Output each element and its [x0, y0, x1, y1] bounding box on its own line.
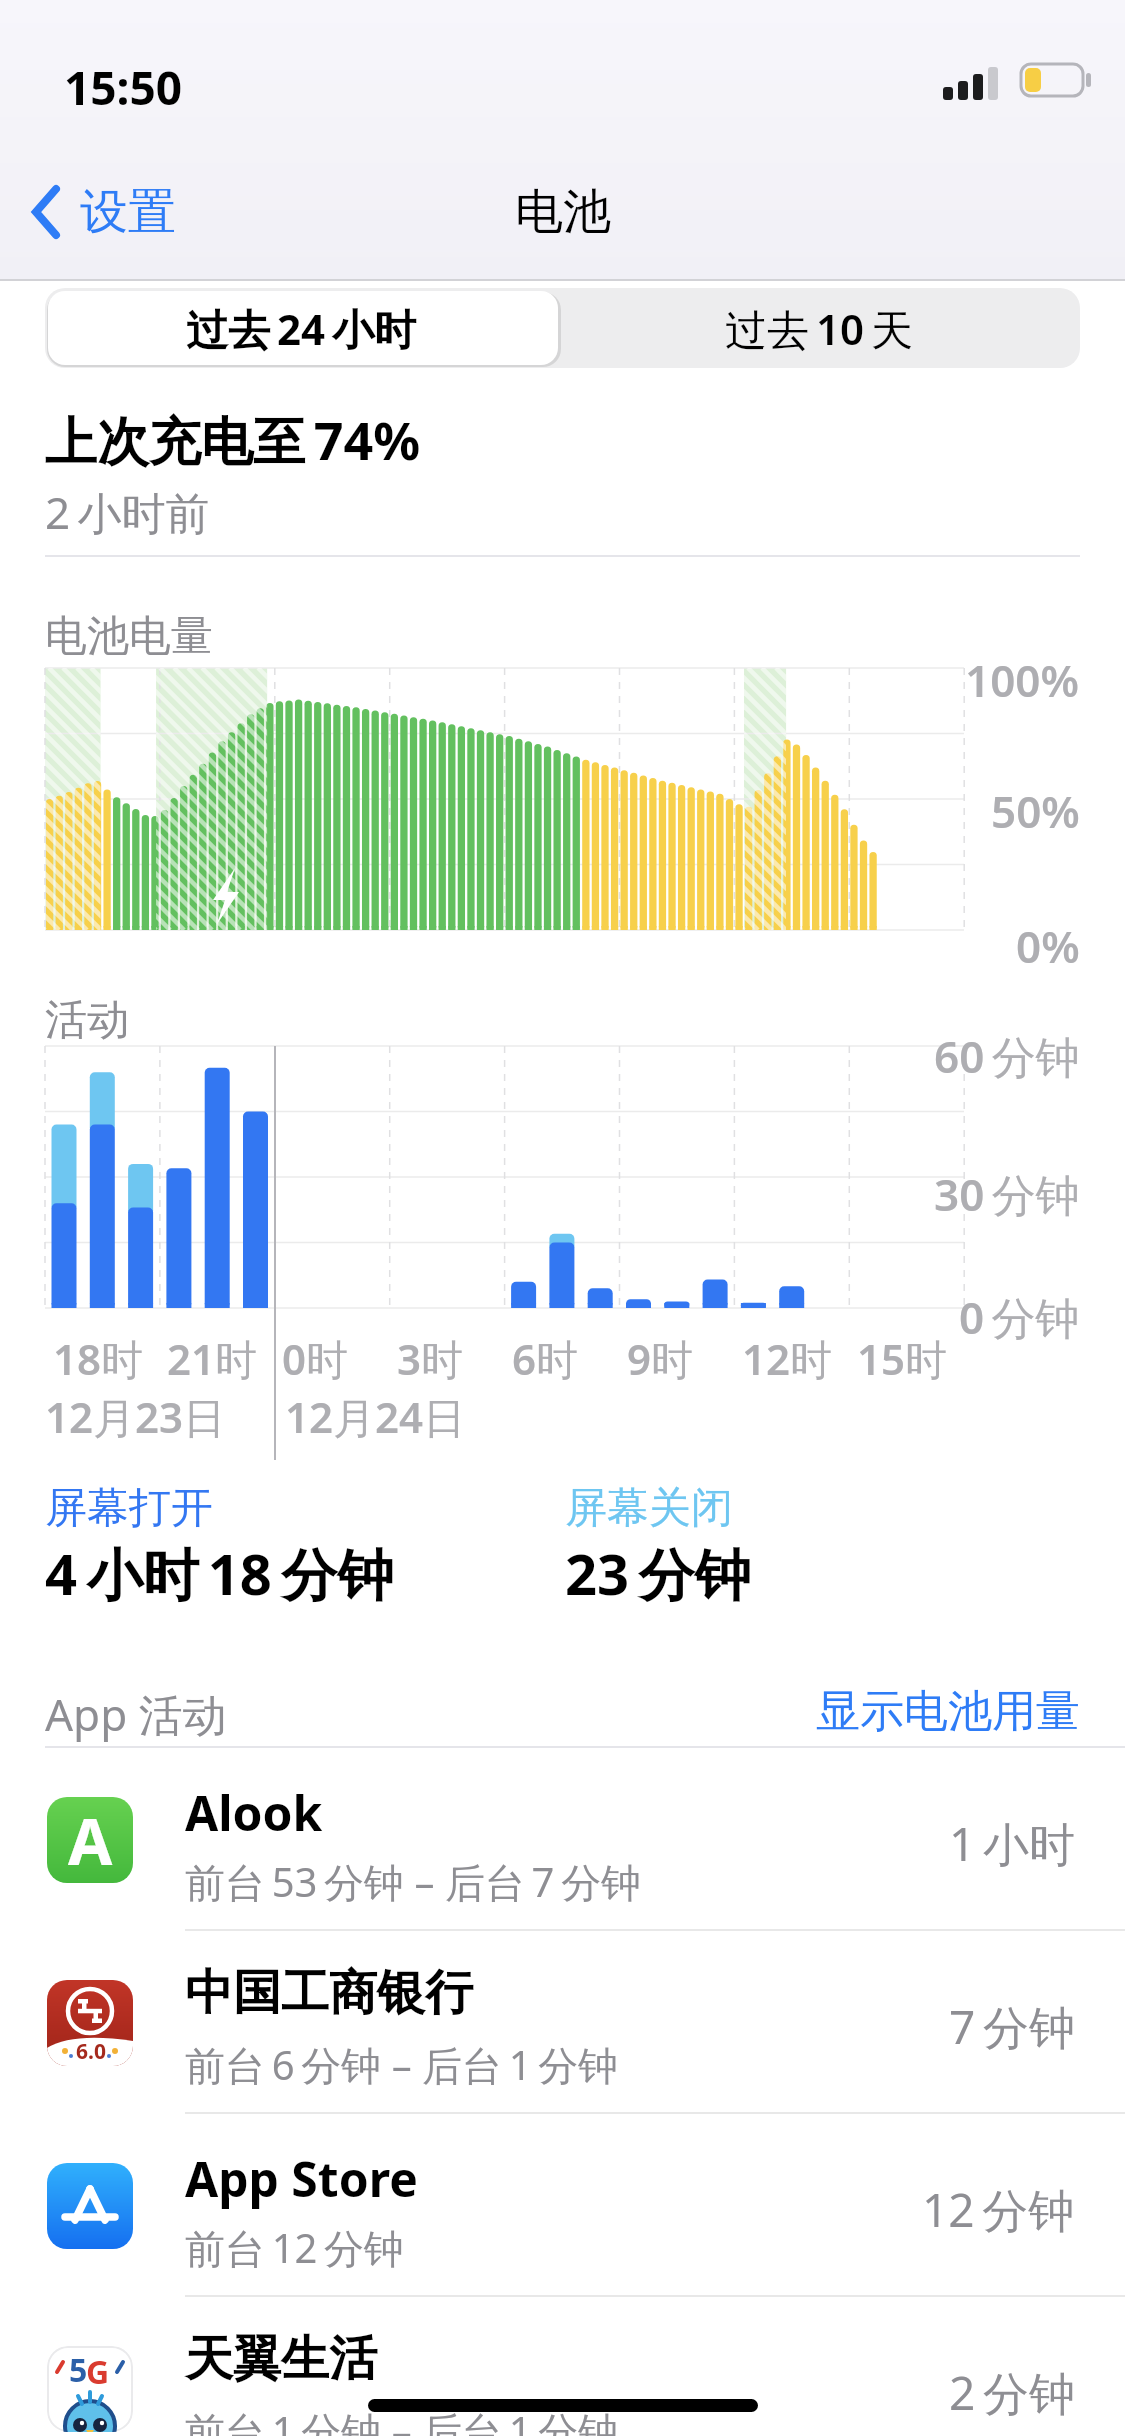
staticText: 0时 — [282, 1330, 349, 1387]
staticText: 4 小时 18 分钟 — [45, 1535, 394, 1611]
staticText: 2 小时前 — [45, 482, 210, 542]
staticText: 中国工商银行 — [185, 1963, 473, 2023]
staticText: 12 分钟 — [922, 2178, 1075, 2241]
staticText: 过去 10 天 — [725, 300, 914, 357]
staticText: 12月24日 — [285, 1388, 466, 1445]
button[interactable] — [48, 291, 558, 365]
staticText: 天翼生活 — [185, 2329, 377, 2389]
staticText: 2 分钟 — [949, 2361, 1075, 2424]
button[interactable] — [0, 1748, 1125, 1931]
button[interactable]: 过去 10 天 — [558, 288, 1080, 368]
staticText: 前台 53 分钟 – 后台 7 分钟 — [185, 1854, 642, 1909]
staticText: 前台 6 分钟 – 后台 1 分钟 — [185, 2037, 619, 2092]
staticText: 上次充电至 74% — [45, 404, 421, 475]
staticText: 12时 — [742, 1330, 833, 1387]
staticText: 过去 24 小时 — [186, 300, 417, 357]
staticText: 活动 — [45, 994, 129, 1047]
staticText: 5 — [69, 2348, 88, 2392]
staticText: 9时 — [627, 1330, 694, 1387]
staticText: 6时 — [512, 1330, 579, 1387]
staticText: 15时 — [857, 1330, 948, 1387]
staticText: 屏幕关闭 — [565, 1482, 733, 1535]
staticText: 7 分钟 — [949, 1995, 1075, 2058]
staticText: 60 分钟 — [934, 1026, 1080, 1086]
staticText: 设置 — [80, 182, 176, 242]
staticText: 1 小时 — [949, 1812, 1075, 1875]
staticText: 12月23日 — [45, 1388, 226, 1445]
button[interactable]: 显示电池用量 — [700, 1684, 1080, 1740]
staticText: 屏幕打开 — [45, 1482, 213, 1535]
staticText: App Store — [185, 2146, 418, 2211]
button[interactable] — [0, 2114, 1125, 2297]
staticText: 30 分钟 — [934, 1164, 1080, 1224]
staticText: Alook — [185, 1780, 323, 1845]
staticText: 电池 — [515, 182, 611, 242]
button[interactable] — [0, 1931, 1125, 2114]
staticText: 电池电量 — [45, 610, 213, 663]
staticText: 21时 — [167, 1330, 258, 1387]
staticText: 3时 — [397, 1330, 464, 1387]
staticText: 前台 1 分钟 – 后台 1 分钟 — [185, 2403, 619, 2436]
staticText: G — [86, 2350, 110, 2394]
staticText: 显示电池用量 — [816, 1684, 1080, 1739]
staticText: 前台 12 分钟 — [185, 2220, 405, 2275]
staticText: A — [68, 1797, 113, 1883]
staticText: 18时 — [53, 1330, 144, 1387]
button[interactable]: 设置 — [80, 182, 176, 242]
staticText: 23 分钟 — [565, 1535, 751, 1611]
staticText: 50% — [991, 781, 1080, 841]
staticText: 6.0 — [76, 2037, 106, 2066]
staticText: 0 分钟 — [959, 1287, 1080, 1347]
button[interactable] — [0, 2297, 1125, 2436]
staticText: App 活动 — [45, 1684, 227, 1744]
staticText: 100% — [965, 650, 1080, 710]
staticText: 15:50 — [64, 56, 183, 119]
staticText: 0% — [1016, 916, 1080, 976]
